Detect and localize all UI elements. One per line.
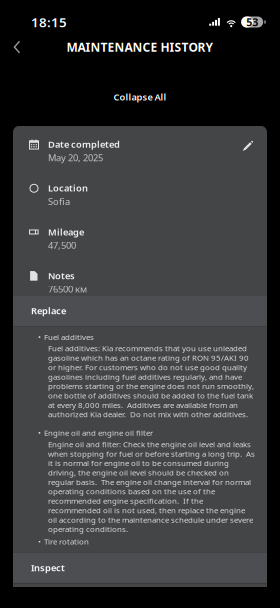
staticText: Tire rotation [44, 537, 89, 546]
staticText: MAINTENANCE HISTORY [66, 39, 213, 55]
staticText: Inspect [31, 561, 65, 574]
staticText: Date completed [48, 138, 120, 150]
staticText: May 20, 2025 [48, 151, 103, 164]
staticText: 76500 км [48, 283, 87, 295]
staticText: Location [48, 182, 88, 194]
staticText: Replace [31, 304, 66, 317]
staticText: Fuel additives: Kia recommends that you … [48, 344, 254, 419]
staticText: Engine oil and filter: Check the engine … [48, 439, 255, 534]
staticText: 18:15 [31, 13, 67, 31]
button[interactable]: Back [4, 34, 30, 60]
staticText: 47,500 [48, 239, 76, 251]
staticText: Mileage [48, 226, 84, 238]
staticText: Fuel additives [44, 332, 94, 341]
staticText: • [38, 428, 41, 437]
staticText: Engine oil and engine oil filter [44, 428, 153, 437]
button[interactable]: Collapse All [113, 85, 166, 109]
staticText: Collapse All [113, 91, 166, 103]
button[interactable]: Edit entry [240, 138, 256, 154]
staticText: 53 [246, 15, 258, 29]
staticText: Sofia [48, 195, 70, 208]
staticText: • [38, 537, 41, 546]
staticText: Notes [48, 269, 75, 282]
staticText: • [38, 332, 41, 341]
